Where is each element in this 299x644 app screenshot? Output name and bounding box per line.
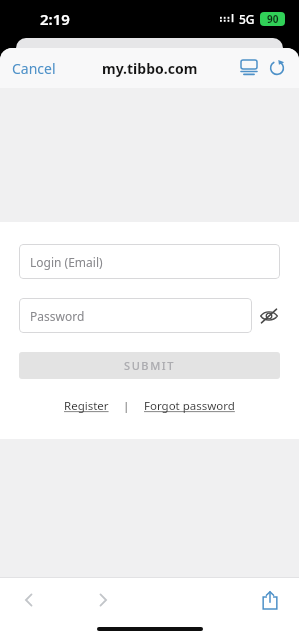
staticText: 5G [239, 11, 255, 27]
staticText: SUBMIT [124, 358, 176, 373]
button[interactable]: Reader view [235, 54, 263, 82]
staticText: Register [64, 398, 109, 414]
staticText: Forgot password [144, 398, 235, 414]
staticText: Login (Email) [30, 254, 103, 270]
staticText: 90 [267, 12, 279, 26]
button[interactable]: Password [19, 298, 252, 333]
button[interactable]: Show password [252, 301, 280, 331]
button[interactable]: Login (Email) [19, 244, 280, 279]
button[interactable]: Reload [263, 54, 291, 82]
button[interactable]: Forgot password [140, 396, 239, 416]
staticText: 2:19 [40, 9, 70, 29]
button[interactable]: Register [60, 396, 113, 416]
staticText: Password [30, 308, 85, 324]
staticText: | [123, 398, 130, 414]
button[interactable]: SUBMIT [19, 352, 280, 379]
button[interactable]: Cancel [0, 51, 68, 86]
staticText: Cancel [12, 59, 56, 78]
staticText: my.tibbo.com [102, 59, 198, 78]
button[interactable]: Share [255, 585, 285, 615]
button[interactable]: Back [14, 585, 44, 615]
button[interactable]: Forward [88, 585, 118, 615]
